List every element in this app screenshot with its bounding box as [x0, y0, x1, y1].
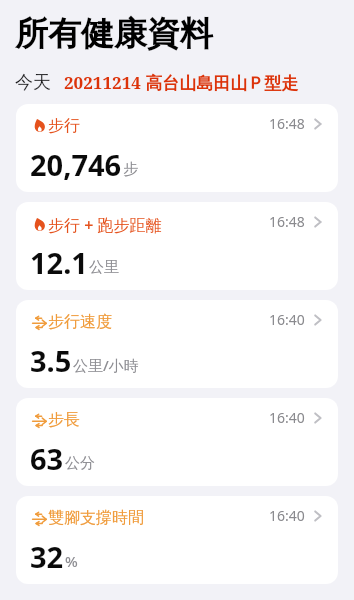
staticText: 16:48: [269, 114, 305, 133]
staticText: 16:40: [269, 506, 305, 525]
staticText: %: [65, 551, 78, 571]
staticText: 公分: [65, 454, 95, 473]
staticText: 32: [30, 537, 64, 576]
staticText: 步行 + 跑步距離: [48, 214, 162, 236]
staticText: 16:48: [269, 212, 305, 231]
staticText: 所有健康資料: [15, 13, 213, 55]
staticText: 步長: [48, 410, 80, 430]
button[interactable]: 步行速度: [16, 300, 338, 388]
staticText: 步行速度: [48, 312, 112, 332]
staticText: 公里/小時: [73, 355, 139, 375]
button[interactable]: 步行: [16, 104, 338, 192]
staticText: 3.5: [30, 341, 72, 380]
staticText: 公里: [89, 258, 119, 277]
staticText: 16:40: [269, 310, 305, 329]
staticText: 20211214 高台山島田山Ｐ型走: [64, 71, 299, 94]
button[interactable]: 步行 + 跑步距離: [16, 202, 338, 290]
button[interactable]: 雙腳支撐時間: [16, 496, 338, 584]
staticText: 20,746: [30, 145, 122, 184]
button[interactable]: 步長: [16, 398, 338, 486]
staticText: 今天: [15, 71, 51, 94]
staticText: 步: [123, 160, 138, 179]
staticText: 雙腳支撐時間: [48, 508, 144, 528]
staticText: 步行: [48, 116, 80, 136]
staticText: 16:40: [269, 408, 305, 427]
staticText: 12.1: [30, 243, 88, 282]
staticText: 63: [30, 439, 64, 478]
